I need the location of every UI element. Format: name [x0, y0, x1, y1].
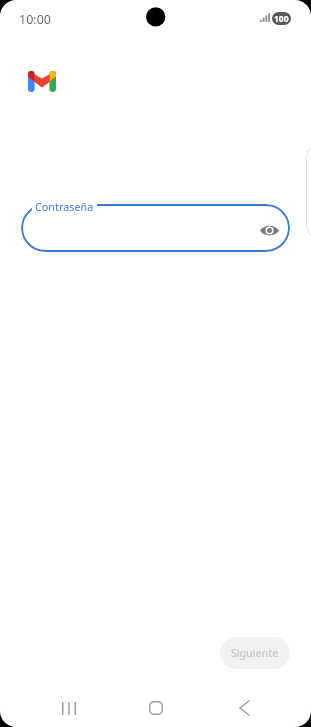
staticText: Contraseña	[35, 199, 94, 214]
button[interactable]: Mostrar contraseña	[255, 216, 283, 244]
staticText: 100	[274, 13, 289, 25]
button[interactable]: Contraseña	[21, 204, 290, 252]
button[interactable]: Atrás	[223, 694, 265, 722]
button[interactable]: Siguiente	[220, 637, 290, 669]
staticText: Siguiente	[231, 646, 279, 660]
staticText: 10:00	[19, 11, 51, 28]
button[interactable]: Inicio	[135, 694, 177, 722]
button[interactable]: Recientes	[48, 694, 90, 722]
